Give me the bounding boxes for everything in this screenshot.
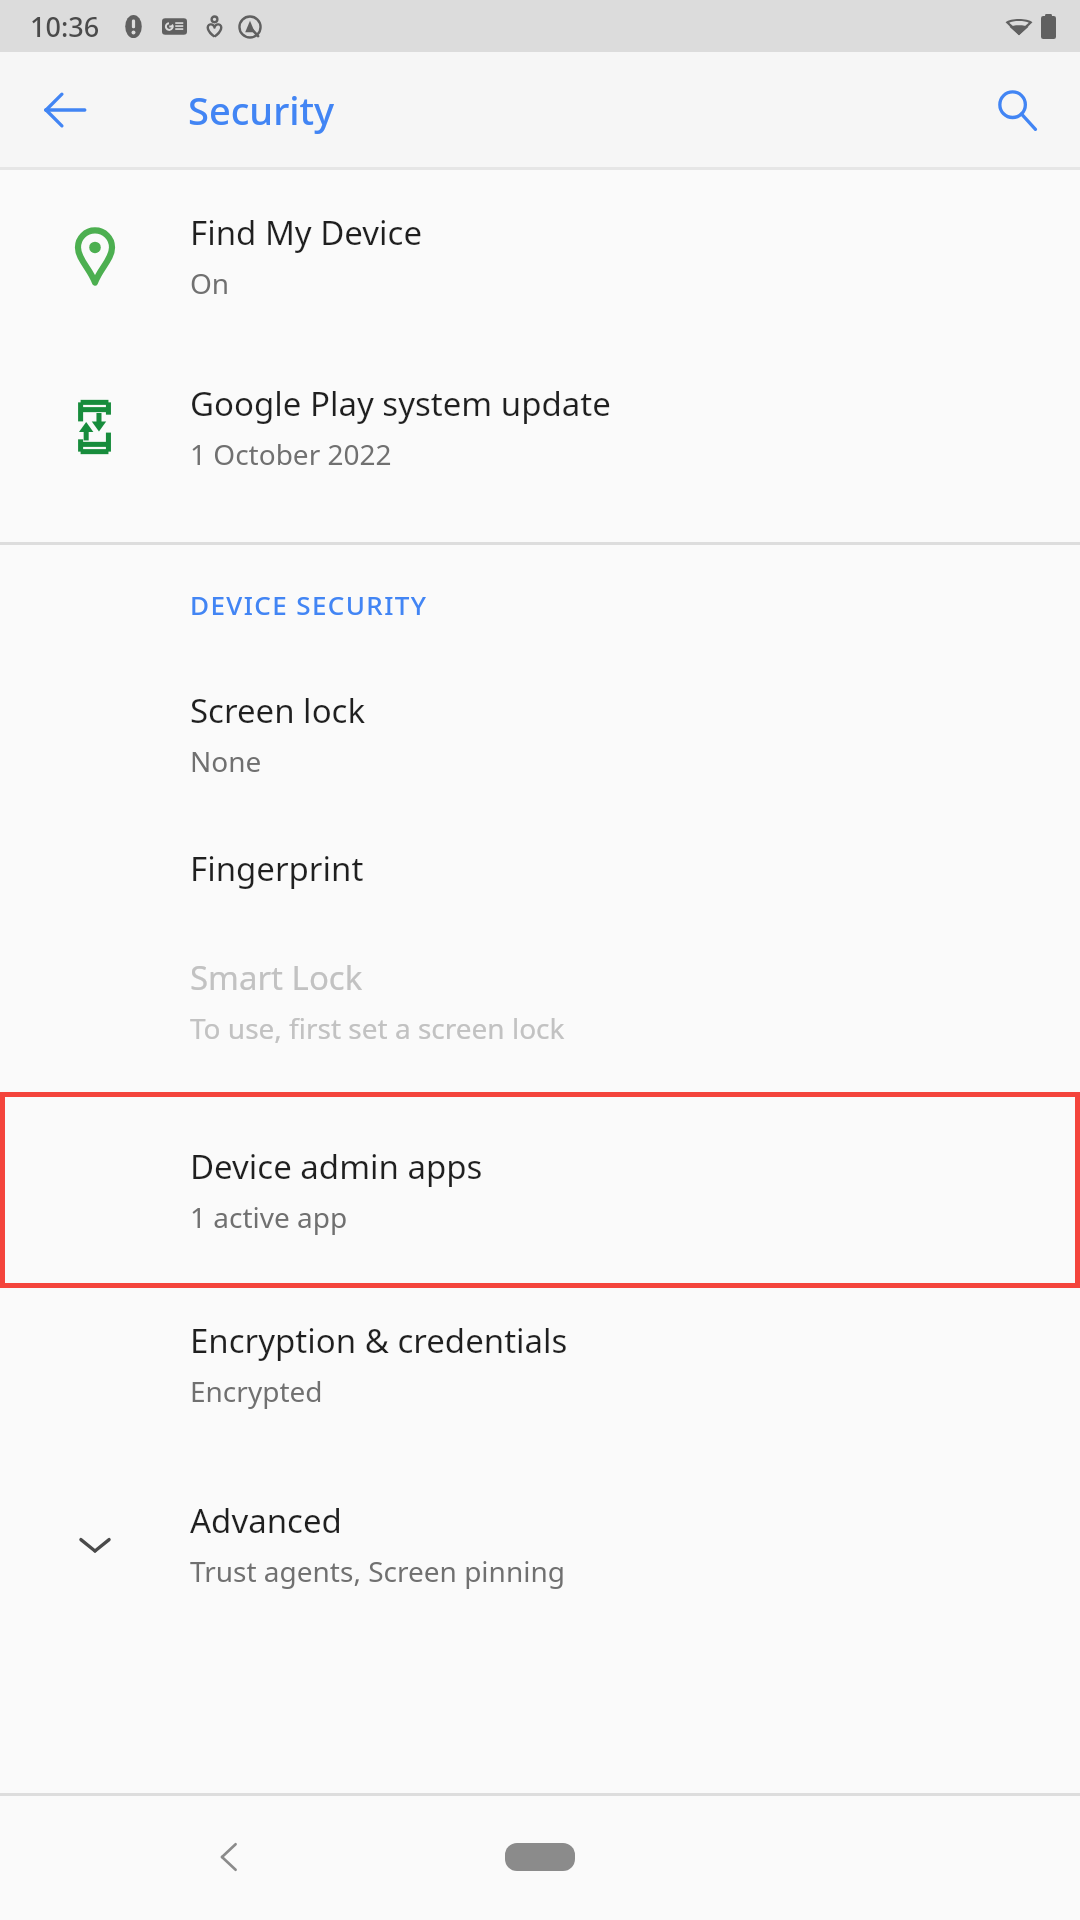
- staticText: Encrypted: [190, 1372, 323, 1410]
- button[interactable]: Find My Device: [0, 170, 1080, 342]
- staticText: Encryption & credentials: [190, 1318, 568, 1363]
- staticText: Google Play system update: [190, 381, 611, 426]
- button[interactable]: Home: [470, 1822, 610, 1892]
- button[interactable]: Advanced: [0, 1474, 1080, 1614]
- staticText: Find My Device: [190, 210, 423, 255]
- staticText: None: [190, 742, 262, 780]
- button[interactable]: Encryption & credentials: [0, 1288, 1080, 1440]
- staticText: Fingerprint: [190, 846, 364, 891]
- staticText: DEVICE SECURITY: [190, 587, 428, 622]
- staticText: On: [190, 264, 230, 302]
- button[interactable]: Search: [982, 75, 1052, 145]
- staticText: Security: [188, 84, 335, 136]
- staticText: Advanced: [190, 1498, 342, 1543]
- staticText: 1 October 2022: [190, 435, 392, 473]
- staticText: Screen lock: [190, 688, 366, 733]
- button[interactable]: Device admin apps: [0, 1092, 1080, 1288]
- button[interactable]: Smart Lock: [0, 932, 1080, 1070]
- staticText: 10:36: [30, 8, 100, 45]
- button[interactable]: Fingerprint: [0, 804, 1080, 932]
- button[interactable]: Navigate up: [30, 75, 100, 145]
- staticText: Device admin apps: [190, 1144, 483, 1189]
- staticText: 1 active app: [190, 1198, 348, 1236]
- staticText: To use, first set a screen lock: [190, 1009, 565, 1047]
- button[interactable]: Back: [185, 1812, 275, 1902]
- staticText: Trust agents, Screen pinning: [190, 1552, 565, 1590]
- staticText: Smart Lock: [190, 955, 363, 1000]
- button[interactable]: Google Play system update: [0, 342, 1080, 512]
- button[interactable]: Screen lock: [0, 664, 1080, 804]
